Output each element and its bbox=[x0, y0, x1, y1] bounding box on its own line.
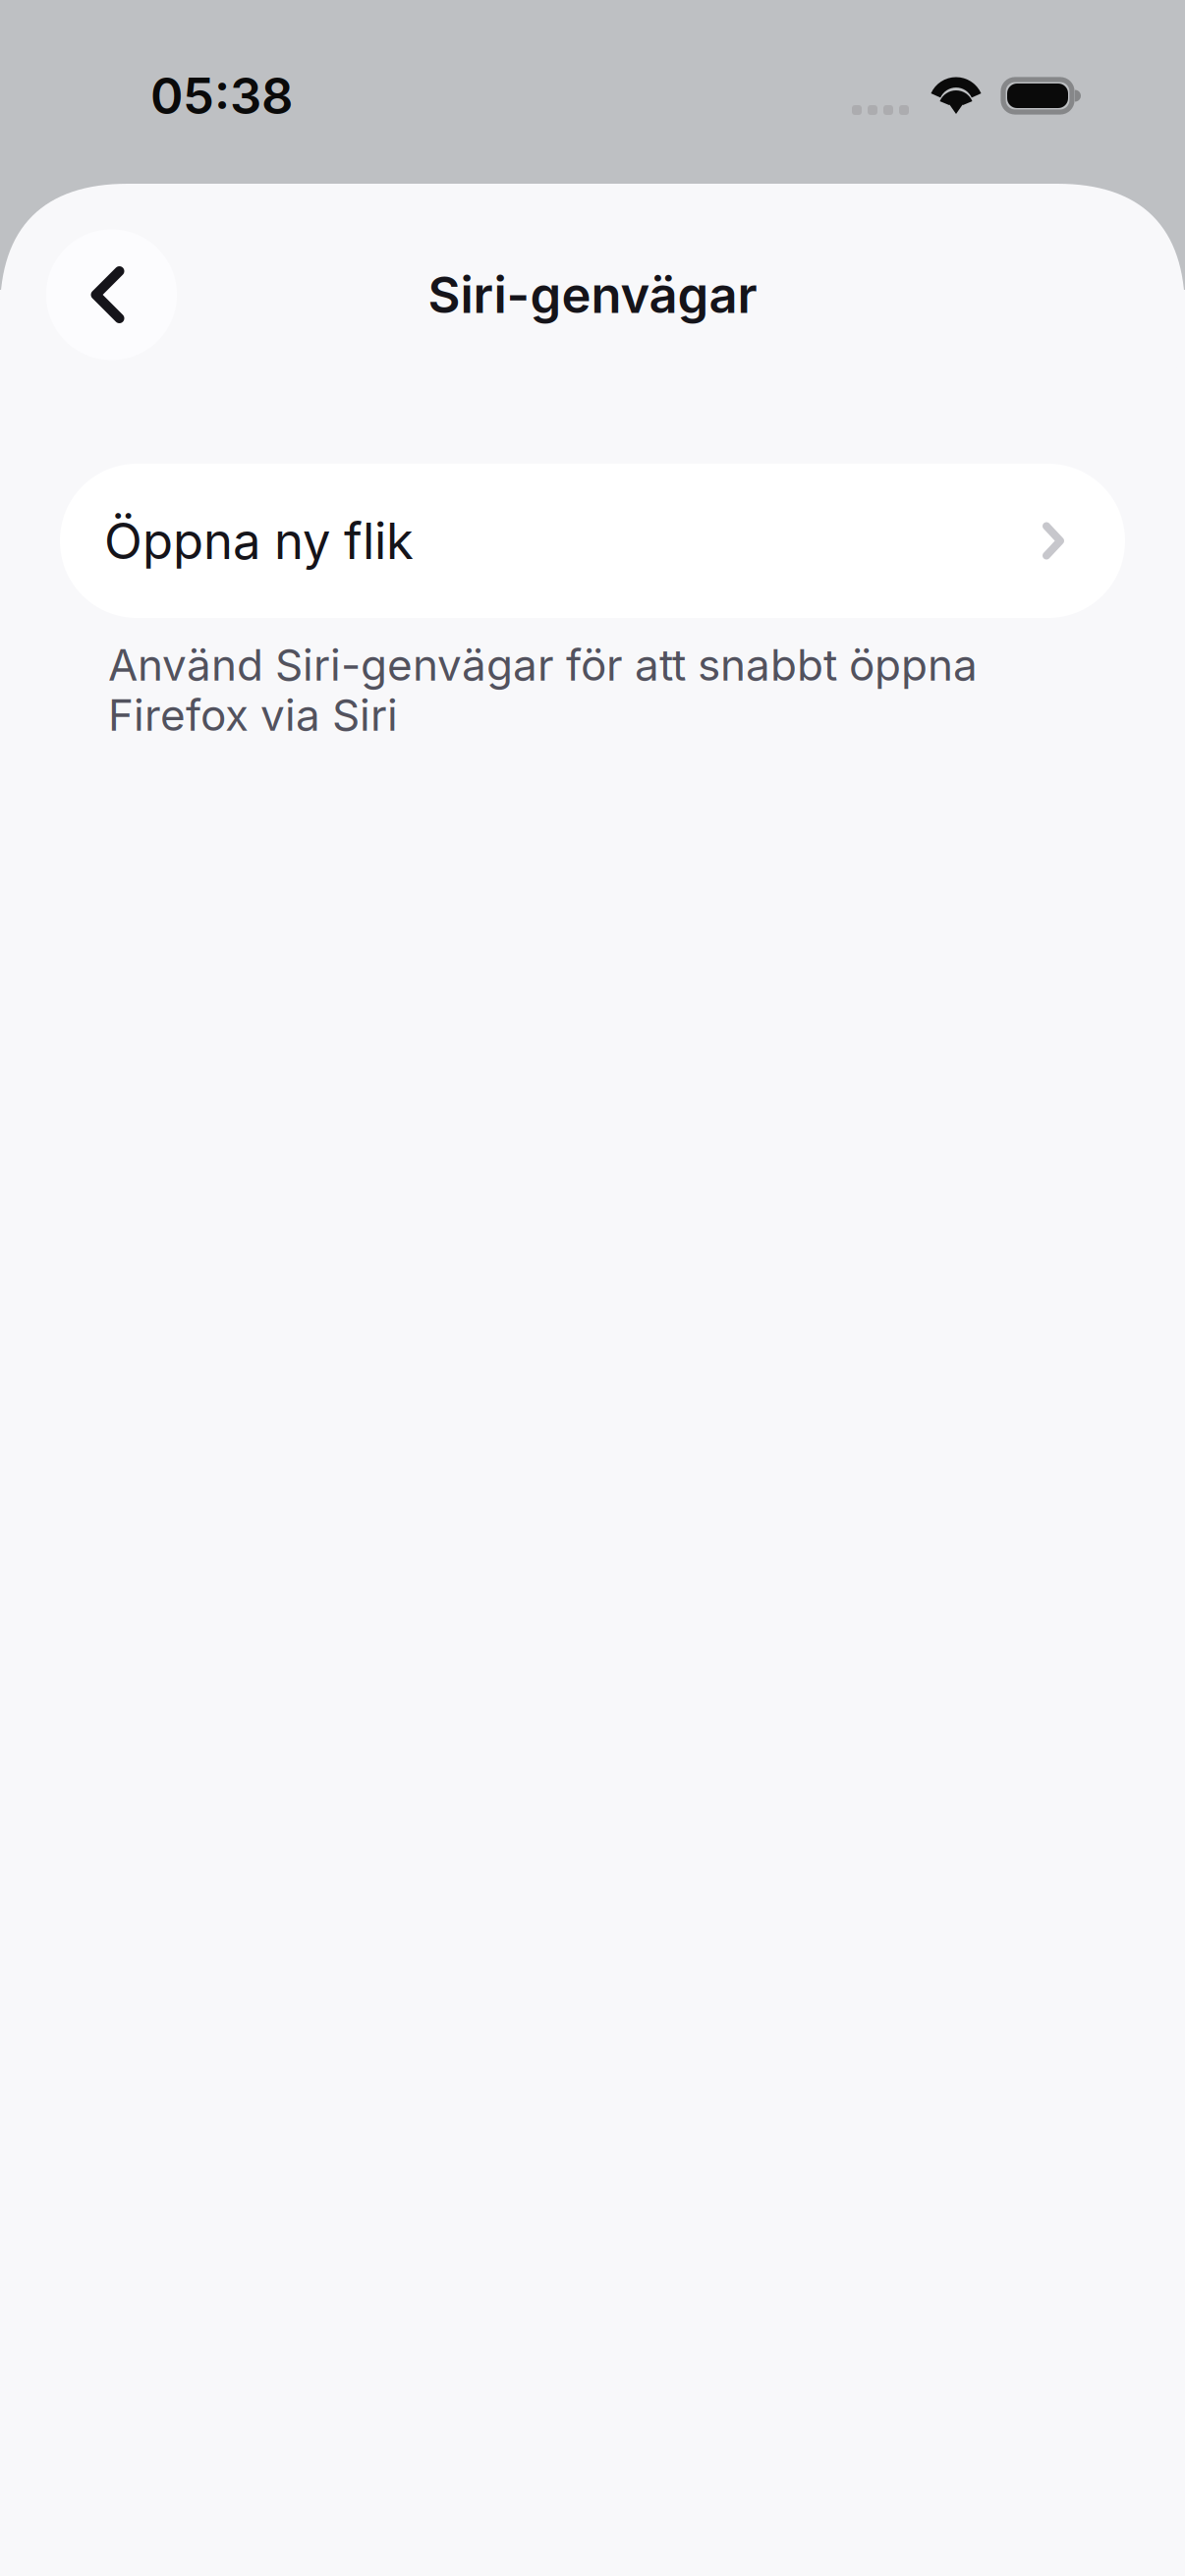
button[interactable]: Öppna ny flik bbox=[60, 464, 1125, 618]
staticText: Använd Siri-genvägar för att snabbt öppn… bbox=[108, 639, 978, 691]
staticText: 05:38 bbox=[150, 66, 293, 126]
staticText: Siri-genvägar bbox=[428, 265, 757, 325]
staticText: Firefox via Siri bbox=[108, 689, 398, 741]
button[interactable]: Back bbox=[46, 229, 177, 360]
staticText: Öppna ny flik bbox=[104, 511, 414, 571]
